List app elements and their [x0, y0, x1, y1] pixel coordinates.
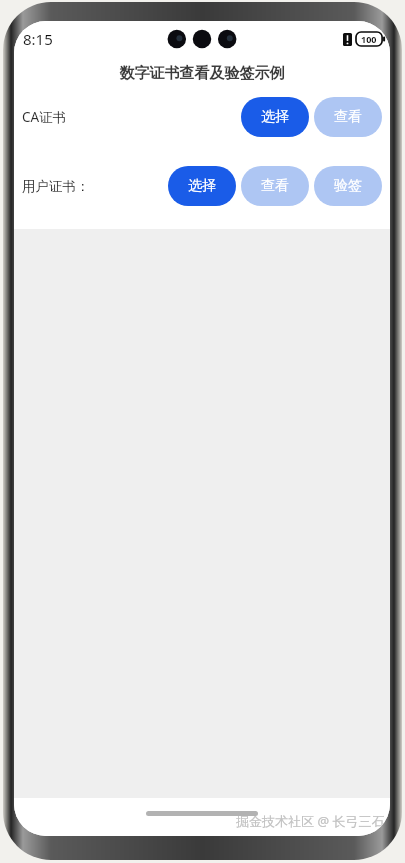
staticText: 掘金技术社区 @ 长弓三石 — [236, 812, 385, 830]
staticText: 100 — [361, 33, 377, 45]
staticText: 用户证书： — [22, 178, 90, 195]
staticText: 验签 — [334, 177, 362, 195]
staticText: 查看 — [261, 177, 289, 195]
staticText: CA证书 — [22, 108, 67, 126]
button[interactable]: 查看 — [314, 97, 382, 137]
staticText: 查看 — [334, 108, 362, 126]
staticText: 8:15 — [23, 29, 53, 49]
staticText: 数字证书查看及验签示例 — [14, 64, 390, 83]
button[interactable]: 查看 — [241, 166, 309, 206]
button[interactable]: 选择 — [168, 166, 236, 206]
button[interactable]: 选择 — [241, 97, 309, 137]
staticText: 选择 — [188, 177, 216, 195]
staticText: 选择 — [261, 108, 289, 126]
button[interactable]: 验签 — [314, 166, 382, 206]
